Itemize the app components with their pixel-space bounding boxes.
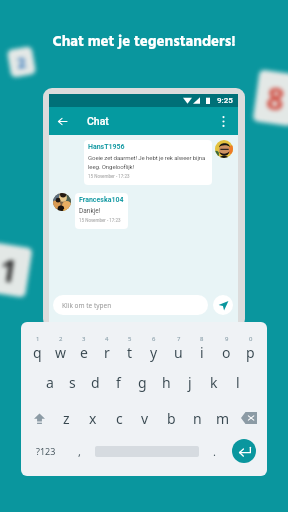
staticText: 9:25 [217, 96, 233, 105]
staticText: x [89, 409, 97, 428]
button[interactable]: d [84, 368, 107, 396]
staticText: a [46, 373, 54, 392]
button[interactable]: HansT1956 [88, 143, 209, 179]
button[interactable]: 6 [142, 330, 166, 366]
staticText: j [188, 373, 192, 392]
button[interactable]: . [202, 434, 226, 468]
staticText: 1 [36, 335, 40, 343]
button[interactable]: k [202, 368, 226, 396]
staticText: 15 November - 17:23 [88, 174, 130, 179]
staticText: h [162, 373, 171, 392]
staticText: e [80, 343, 88, 362]
staticText: q [33, 343, 42, 362]
button[interactable]: a [38, 368, 61, 396]
staticText: 9 [225, 335, 229, 343]
staticText: i [200, 343, 204, 362]
button[interactable]: x [80, 404, 106, 432]
staticText: Dankje! [79, 207, 101, 215]
staticText: d [91, 373, 100, 392]
staticText: o [222, 343, 231, 362]
button[interactable]: b [158, 404, 184, 432]
button[interactable]: v [132, 404, 158, 432]
staticText: Chat [87, 115, 109, 127]
staticText: 6 [152, 335, 156, 343]
staticText: 4 [105, 335, 109, 343]
staticText: t [127, 343, 133, 362]
button[interactable]: 7 [166, 330, 190, 366]
staticText: 1 [0, 249, 21, 292]
staticText: Klik om te typen [62, 301, 112, 310]
button[interactable]: 2 [49, 330, 72, 366]
staticText: 2 [15, 51, 28, 73]
staticText: 3 [82, 335, 86, 343]
staticText: 2 [59, 335, 63, 343]
staticText: z [63, 409, 70, 428]
staticText: b [167, 409, 176, 428]
staticText: Franceska104 [79, 196, 124, 204]
button[interactable]: z [53, 404, 80, 432]
staticText: v [141, 409, 149, 428]
button[interactable]: 8 [190, 330, 214, 366]
staticText: . [213, 444, 216, 459]
button[interactable]: Klik om te typen [53, 295, 208, 315]
button[interactable]: Shift [26, 404, 53, 432]
button[interactable]: ?123 [26, 434, 66, 468]
button[interactable]: Franceska104 [79, 196, 124, 223]
button[interactable]: 4 [95, 330, 118, 366]
button[interactable]: m [210, 404, 236, 432]
staticText: , [78, 444, 81, 459]
button[interactable]: s [61, 368, 84, 396]
staticText: 8 [200, 335, 204, 343]
staticText: 15 November - 17:23 [79, 218, 121, 223]
staticText: l [236, 373, 240, 392]
button[interactable]: g [130, 368, 154, 396]
button[interactable]: More options [212, 110, 234, 132]
staticText: p [246, 343, 255, 362]
button[interactable]: c [106, 404, 132, 432]
staticText: m [216, 409, 230, 428]
button[interactable]: 1 [26, 330, 49, 366]
staticText: 8 [264, 77, 288, 120]
staticText: 0 [249, 335, 253, 343]
staticText: y [150, 343, 158, 362]
staticText: n [193, 409, 202, 428]
staticText: Goeie zet daarmet! Je hebt je rek alweer… [88, 154, 209, 171]
button[interactable]: 0 [238, 330, 262, 366]
staticText: w [55, 343, 67, 362]
staticText: ?123 [36, 445, 56, 457]
button[interactable]: h [154, 368, 178, 396]
button[interactable]: Enter [232, 439, 256, 463]
button[interactable]: l [226, 368, 250, 396]
button[interactable]: n [184, 404, 210, 432]
button[interactable]: 3 [72, 330, 95, 366]
staticText: s [69, 373, 76, 392]
staticText: u [174, 343, 183, 362]
button[interactable]: 9 [214, 330, 238, 366]
staticText: g [138, 373, 147, 392]
staticText: HansT1956 [88, 143, 125, 151]
staticText: k [210, 373, 218, 392]
staticText: 5 [128, 335, 132, 343]
button[interactable]: Send [213, 295, 233, 315]
button[interactable]: Back [53, 112, 71, 130]
staticText: c [116, 409, 123, 428]
staticText: r [104, 343, 110, 362]
button[interactable]: Backspace [236, 404, 262, 432]
button[interactable]: f [107, 368, 130, 396]
staticText: 7 [177, 335, 181, 343]
staticText: Chat met je tegenstanders! [0, 30, 288, 54]
button[interactable]: , [66, 434, 92, 468]
staticText: f [116, 373, 121, 392]
button[interactable]: j [178, 368, 202, 396]
button[interactable]: 5 [118, 330, 142, 366]
